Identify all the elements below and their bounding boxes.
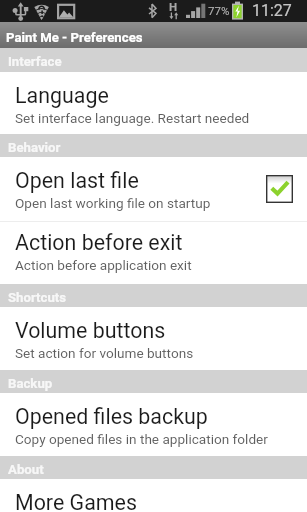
staticText: More Games — [15, 490, 137, 512]
staticText: 11:27 — [252, 1, 292, 20]
staticText: Open last working file on startup — [15, 195, 211, 211]
staticText: About — [8, 462, 44, 477]
staticText: Behavior — [8, 140, 61, 155]
staticText: Set interface language. Restart needed — [15, 110, 250, 126]
staticText: Interface — [8, 54, 62, 69]
staticText: Copy opened files in the application fol… — [15, 431, 268, 447]
staticText: Paint Me - Preferences — [6, 30, 143, 45]
staticText: Volume buttons — [15, 318, 166, 343]
staticText: 77% — [208, 4, 230, 17]
button[interactable]: Open last file — [0, 157, 307, 221]
staticText: Set action for volume buttons — [15, 345, 194, 361]
button[interactable]: Opened files backup — [0, 393, 307, 456]
staticText: Shortcuts — [8, 290, 67, 305]
button[interactable]: Volume buttons — [0, 307, 307, 370]
button[interactable]: Paint Me - Preferences — [0, 22, 307, 48]
button[interactable]: Toggle Open last file — [266, 175, 293, 203]
staticText: Action before exit — [15, 230, 183, 255]
staticText: Open last file — [15, 168, 139, 193]
button[interactable]: Action before exit — [0, 222, 307, 284]
staticText: Opened files backup — [15, 404, 208, 429]
staticText: Backup — [8, 376, 53, 391]
staticText: Language — [15, 83, 109, 108]
staticText: H — [169, 0, 178, 13]
staticText: Action before application exit — [15, 257, 192, 273]
button[interactable]: More Games — [0, 479, 307, 512]
button[interactable]: Language — [0, 72, 307, 134]
